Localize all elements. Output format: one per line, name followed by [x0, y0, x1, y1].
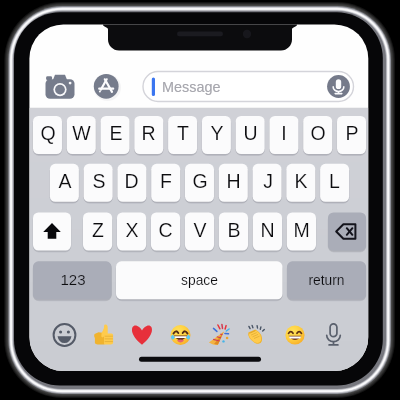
button[interactable]: M: [287, 213, 316, 251]
button[interactable]: Message field: [143, 72, 353, 102]
staticText: X: [125, 219, 139, 241]
staticText: Z: [92, 219, 104, 241]
button[interactable]: G: [185, 164, 214, 202]
staticText: V: [193, 219, 207, 241]
button[interactable]: Q: [33, 116, 62, 154]
button[interactable]: E: [101, 116, 130, 154]
staticText: G: [192, 170, 208, 192]
button[interactable]: space: [116, 261, 283, 299]
staticText: K: [294, 170, 308, 192]
button[interactable]: 123: [33, 261, 112, 299]
staticText: S: [92, 170, 106, 192]
staticText: H: [226, 170, 241, 192]
button[interactable]: J: [253, 164, 282, 202]
staticText: T: [177, 122, 189, 144]
button[interactable]: R: [134, 116, 163, 154]
staticText: A: [58, 170, 72, 192]
button[interactable]: K: [286, 164, 315, 202]
button[interactable]: return: [287, 261, 366, 299]
button[interactable]: Y: [202, 116, 231, 154]
button[interactable]: Grin: [279, 317, 311, 349]
staticText: W: [72, 122, 91, 144]
button[interactable]: U: [236, 116, 265, 154]
staticText: 123: [60, 271, 86, 288]
staticText: R: [141, 122, 156, 144]
button[interactable]: F: [151, 164, 180, 202]
staticText: O: [310, 122, 326, 144]
staticText: D: [124, 170, 139, 192]
button[interactable]: Heart: [126, 317, 158, 349]
staticText: J: [263, 170, 273, 192]
staticText: F: [160, 170, 172, 192]
button[interactable]: X: [117, 213, 146, 251]
button[interactable]: Delete: [328, 213, 366, 251]
staticText: B: [227, 219, 241, 241]
button[interactable]: S: [84, 164, 113, 202]
button[interactable]: C: [151, 213, 180, 251]
button[interactable]: V: [185, 213, 214, 251]
staticText: space: [181, 273, 218, 288]
button[interactable]: Laughing: [164, 317, 196, 349]
button[interactable]: N: [253, 213, 282, 251]
button[interactable]: A: [50, 164, 79, 202]
button[interactable]: L: [320, 164, 349, 202]
button[interactable]: App Store: [94, 62, 142, 108]
button[interactable]: W: [67, 116, 96, 154]
button[interactable]: B: [219, 213, 248, 251]
staticText: P: [345, 122, 359, 144]
staticText: U: [243, 122, 258, 144]
button[interactable]: Thumbs up: [87, 317, 119, 349]
button[interactable]: Emoji: [49, 317, 81, 349]
staticText: C: [158, 219, 173, 241]
button[interactable]: D: [117, 164, 146, 202]
staticText: return: [308, 273, 345, 288]
staticText: Q: [40, 122, 56, 144]
button[interactable]: Clap: [241, 317, 273, 349]
button[interactable]: Shift: [33, 213, 71, 251]
button[interactable]: I: [269, 116, 298, 154]
button[interactable]: H: [219, 164, 248, 202]
staticText: N: [260, 219, 275, 241]
button[interactable]: Z: [83, 213, 112, 251]
staticText: Y: [210, 122, 224, 144]
staticText: M: [293, 219, 310, 241]
button[interactable]: Dictate: [317, 317, 349, 349]
button[interactable]: T: [168, 116, 197, 154]
staticText: I: [281, 122, 287, 144]
button[interactable]: Party: [202, 317, 234, 349]
button[interactable]: O: [303, 116, 332, 154]
button[interactable]: Dictate: [327, 75, 351, 99]
staticText: E: [109, 122, 123, 144]
button[interactable]: P: [337, 116, 366, 154]
staticText: L: [329, 170, 340, 192]
button[interactable]: Camera: [33, 62, 88, 108]
staticText: Message: [162, 79, 221, 95]
